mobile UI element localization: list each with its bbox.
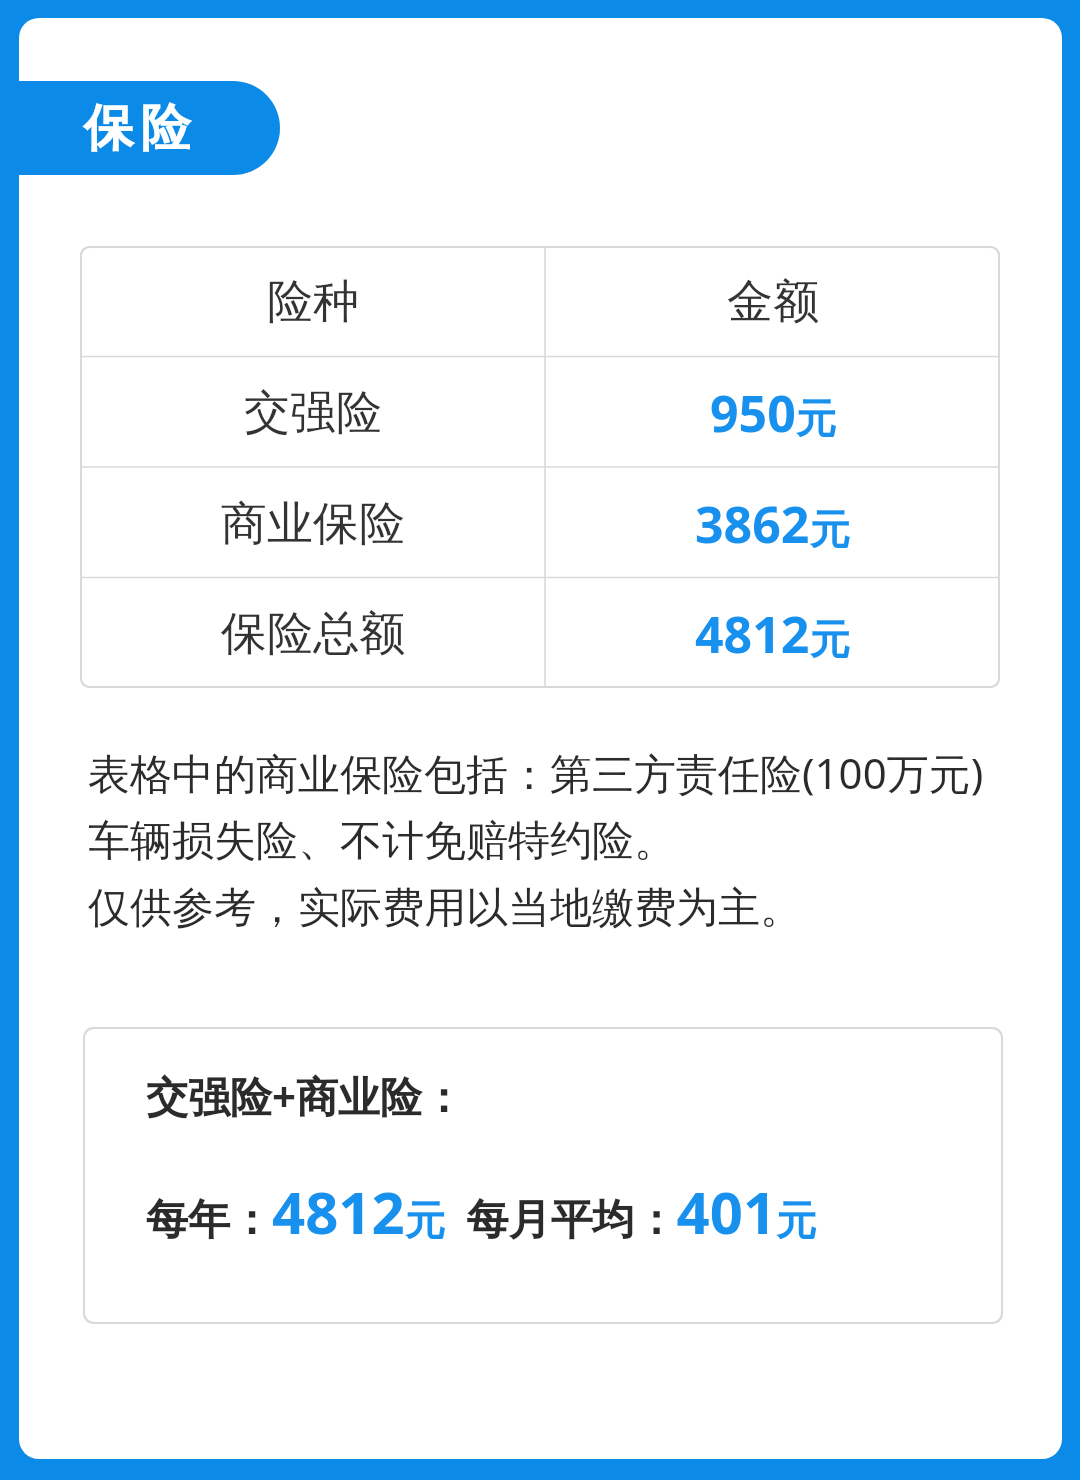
staticText: 每年：4812元 每月平均：401元 xyxy=(146,1172,817,1251)
staticText: 车辆损失险、不计免赔特约险。 xyxy=(88,815,676,868)
staticText: 保险总额 xyxy=(221,605,405,663)
button[interactable]: 商业保险 xyxy=(80,468,1000,579)
staticText: 表格中的商业保险包括：第三方责任险(100万元) xyxy=(88,744,984,801)
staticText: 950元 xyxy=(710,379,836,447)
staticText: 商业保险 xyxy=(221,495,405,553)
staticText: 险种 xyxy=(267,273,359,331)
button[interactable]: 保险总额 xyxy=(80,579,1000,688)
staticText: 4812元 xyxy=(695,600,850,668)
button[interactable]: 交强险 xyxy=(80,357,1000,468)
staticText: 交强险 xyxy=(244,384,382,442)
staticText: 金额 xyxy=(727,273,819,331)
staticText: 仅供参考，实际费用以当地缴费为主。 xyxy=(88,882,802,935)
button[interactable]: 交强险+商业险： xyxy=(85,1029,1001,1322)
button[interactable]: 保险 xyxy=(0,81,280,175)
button[interactable]: 险种 xyxy=(80,246,1000,357)
staticText: 交强险+商业险： xyxy=(146,1067,465,1124)
staticText: 保险 xyxy=(80,97,194,160)
staticText: 3862元 xyxy=(695,490,850,558)
